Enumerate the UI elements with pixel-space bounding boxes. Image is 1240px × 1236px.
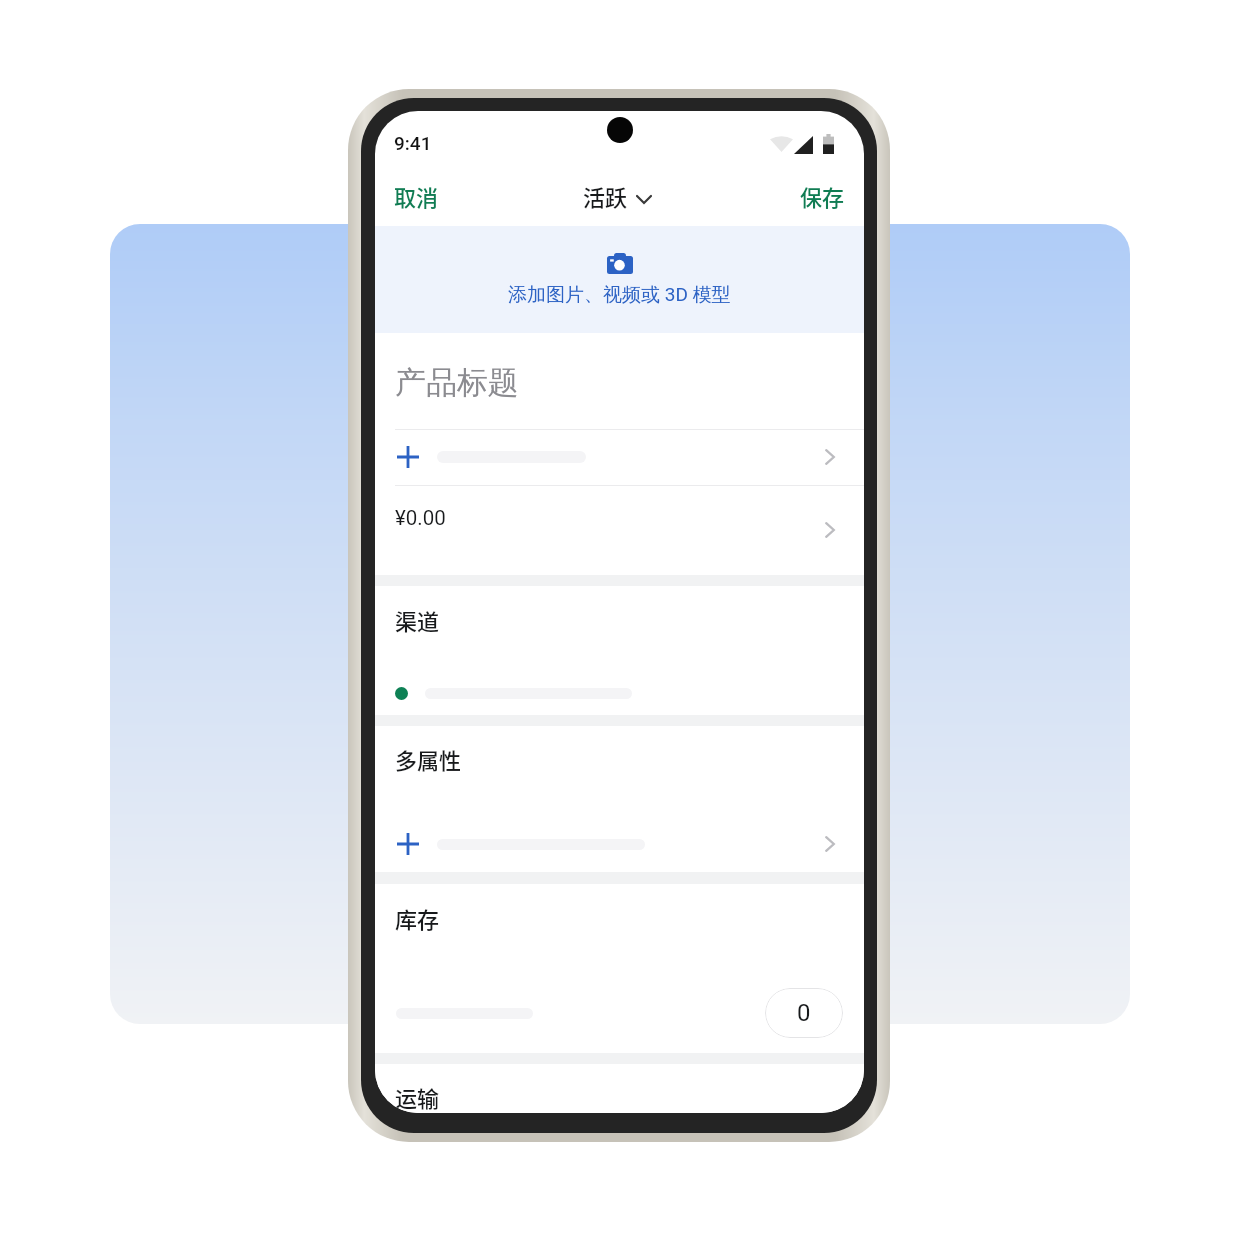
button[interactable]: Add (375, 429, 864, 485)
staticText: 0 (797, 999, 811, 1027)
button[interactable]: 多属性 (395, 743, 462, 775)
other: Add (397, 446, 419, 468)
button[interactable]: ¥0.00 (375, 485, 864, 575)
staticText: 保存 (800, 180, 845, 212)
button[interactable]: 渠道 (395, 604, 440, 636)
button[interactable]: 取消 (375, 168, 453, 224)
other: Add (397, 833, 419, 855)
other: Add media (607, 253, 633, 274)
staticText: 活跃 (583, 180, 628, 212)
staticText: 库存 (395, 902, 440, 934)
button[interactable]: 库存 (395, 902, 440, 934)
staticText: 运输 (395, 1081, 440, 1113)
staticText: ¥0.00 (395, 506, 446, 530)
staticText: 多属性 (395, 743, 462, 775)
button[interactable]: 保存 (786, 168, 864, 224)
staticText: 产品标题 (395, 363, 519, 402)
staticText: 渠道 (395, 604, 440, 636)
button[interactable]: Add media (375, 226, 864, 333)
button[interactable]: 产品标题 (375, 333, 864, 429)
button[interactable]: 0 (765, 988, 843, 1038)
button[interactable]: 运输 (395, 1081, 440, 1113)
staticText: 添加图片、视频或 3D 模型 (508, 283, 731, 307)
button[interactable]: 活跃 (577, 172, 657, 220)
staticText: 取消 (394, 180, 439, 212)
button[interactable]: Add (375, 816, 864, 872)
staticText: 9:41 (394, 132, 432, 154)
